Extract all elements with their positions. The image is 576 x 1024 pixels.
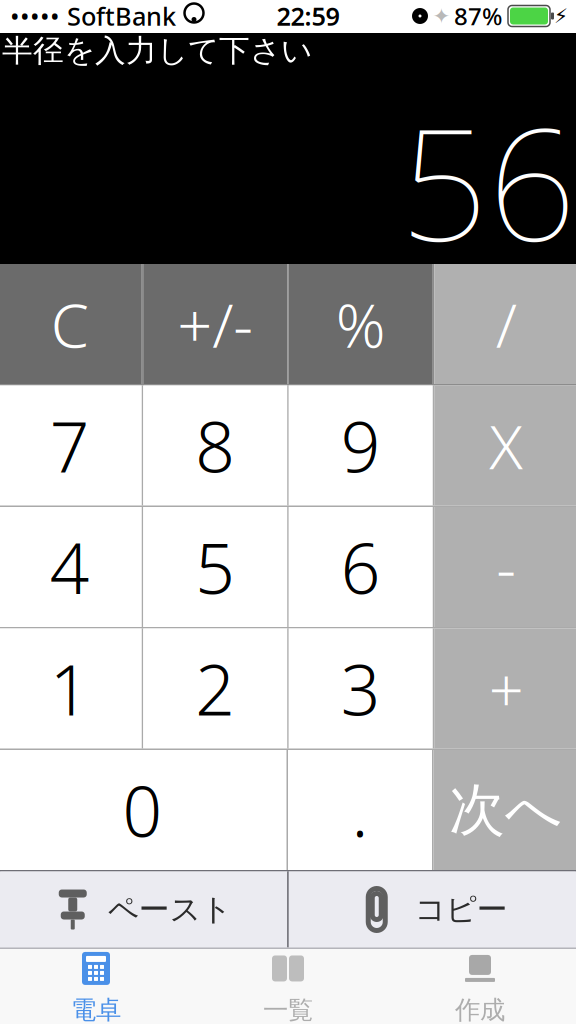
button[interactable]: 7 (0, 385, 142, 505)
staticText: 56 (400, 78, 576, 283)
button[interactable]: 電卓 (0, 949, 192, 1024)
button[interactable]: 9 (289, 385, 433, 505)
staticText: 22:59 (276, 0, 339, 33)
staticText: 6 (341, 521, 381, 613)
button[interactable]: 5 (143, 507, 287, 627)
button[interactable]: % (289, 264, 433, 384)
staticText: 半径を入力して下さい (2, 32, 312, 70)
staticText: 3 (341, 642, 381, 735)
button[interactable]: / (434, 264, 576, 384)
button[interactable]: 次へ (433, 750, 576, 870)
button[interactable]: 8 (143, 385, 287, 505)
staticText: X (489, 405, 523, 486)
staticText: ペースト (108, 891, 232, 928)
button[interactable]: 0 (0, 750, 286, 870)
staticText: ⚡︎ (554, 5, 568, 27)
staticText: % (336, 283, 386, 365)
staticText: - (496, 526, 516, 608)
button[interactable]: 1 (0, 628, 142, 748)
staticText: 2 (195, 642, 235, 735)
staticText: 8 (195, 399, 235, 492)
staticText: ••••• (10, 0, 60, 33)
staticText: 0 (122, 764, 162, 856)
button[interactable]: コピー (289, 871, 576, 947)
staticText: 4 (50, 521, 90, 613)
staticText: + (489, 648, 524, 729)
staticText: C (51, 283, 89, 365)
staticText: 電卓 (71, 994, 121, 1024)
button[interactable]: + (434, 628, 576, 748)
staticText: ✦ (432, 4, 450, 28)
staticText: 9 (341, 399, 381, 492)
staticText: コピー (415, 891, 508, 928)
staticText: SoftBank (60, 0, 183, 33)
staticText: . (351, 764, 368, 856)
staticText: 5 (195, 521, 235, 613)
staticText: 次へ (449, 776, 562, 844)
staticText: / (496, 283, 517, 365)
button[interactable]: 3 (289, 628, 433, 748)
button[interactable]: C (0, 264, 142, 384)
button[interactable]: +/- (143, 264, 287, 384)
button[interactable]: 6 (289, 507, 433, 627)
button[interactable]: 一覧 (192, 949, 384, 1024)
button[interactable]: . (288, 750, 432, 870)
button[interactable]: 作成 (384, 949, 576, 1024)
staticText: 87% (448, 0, 508, 32)
button[interactable]: - (434, 507, 576, 627)
staticText: +/- (177, 283, 253, 365)
button[interactable]: X (434, 385, 576, 505)
staticText: 7 (50, 399, 90, 492)
staticText: 1 (50, 642, 90, 735)
staticText: 作成 (455, 994, 505, 1024)
button[interactable]: 2 (143, 628, 287, 748)
staticText: 一覧 (263, 994, 313, 1024)
button[interactable]: ペースト (0, 871, 287, 947)
button[interactable]: 4 (0, 507, 142, 627)
